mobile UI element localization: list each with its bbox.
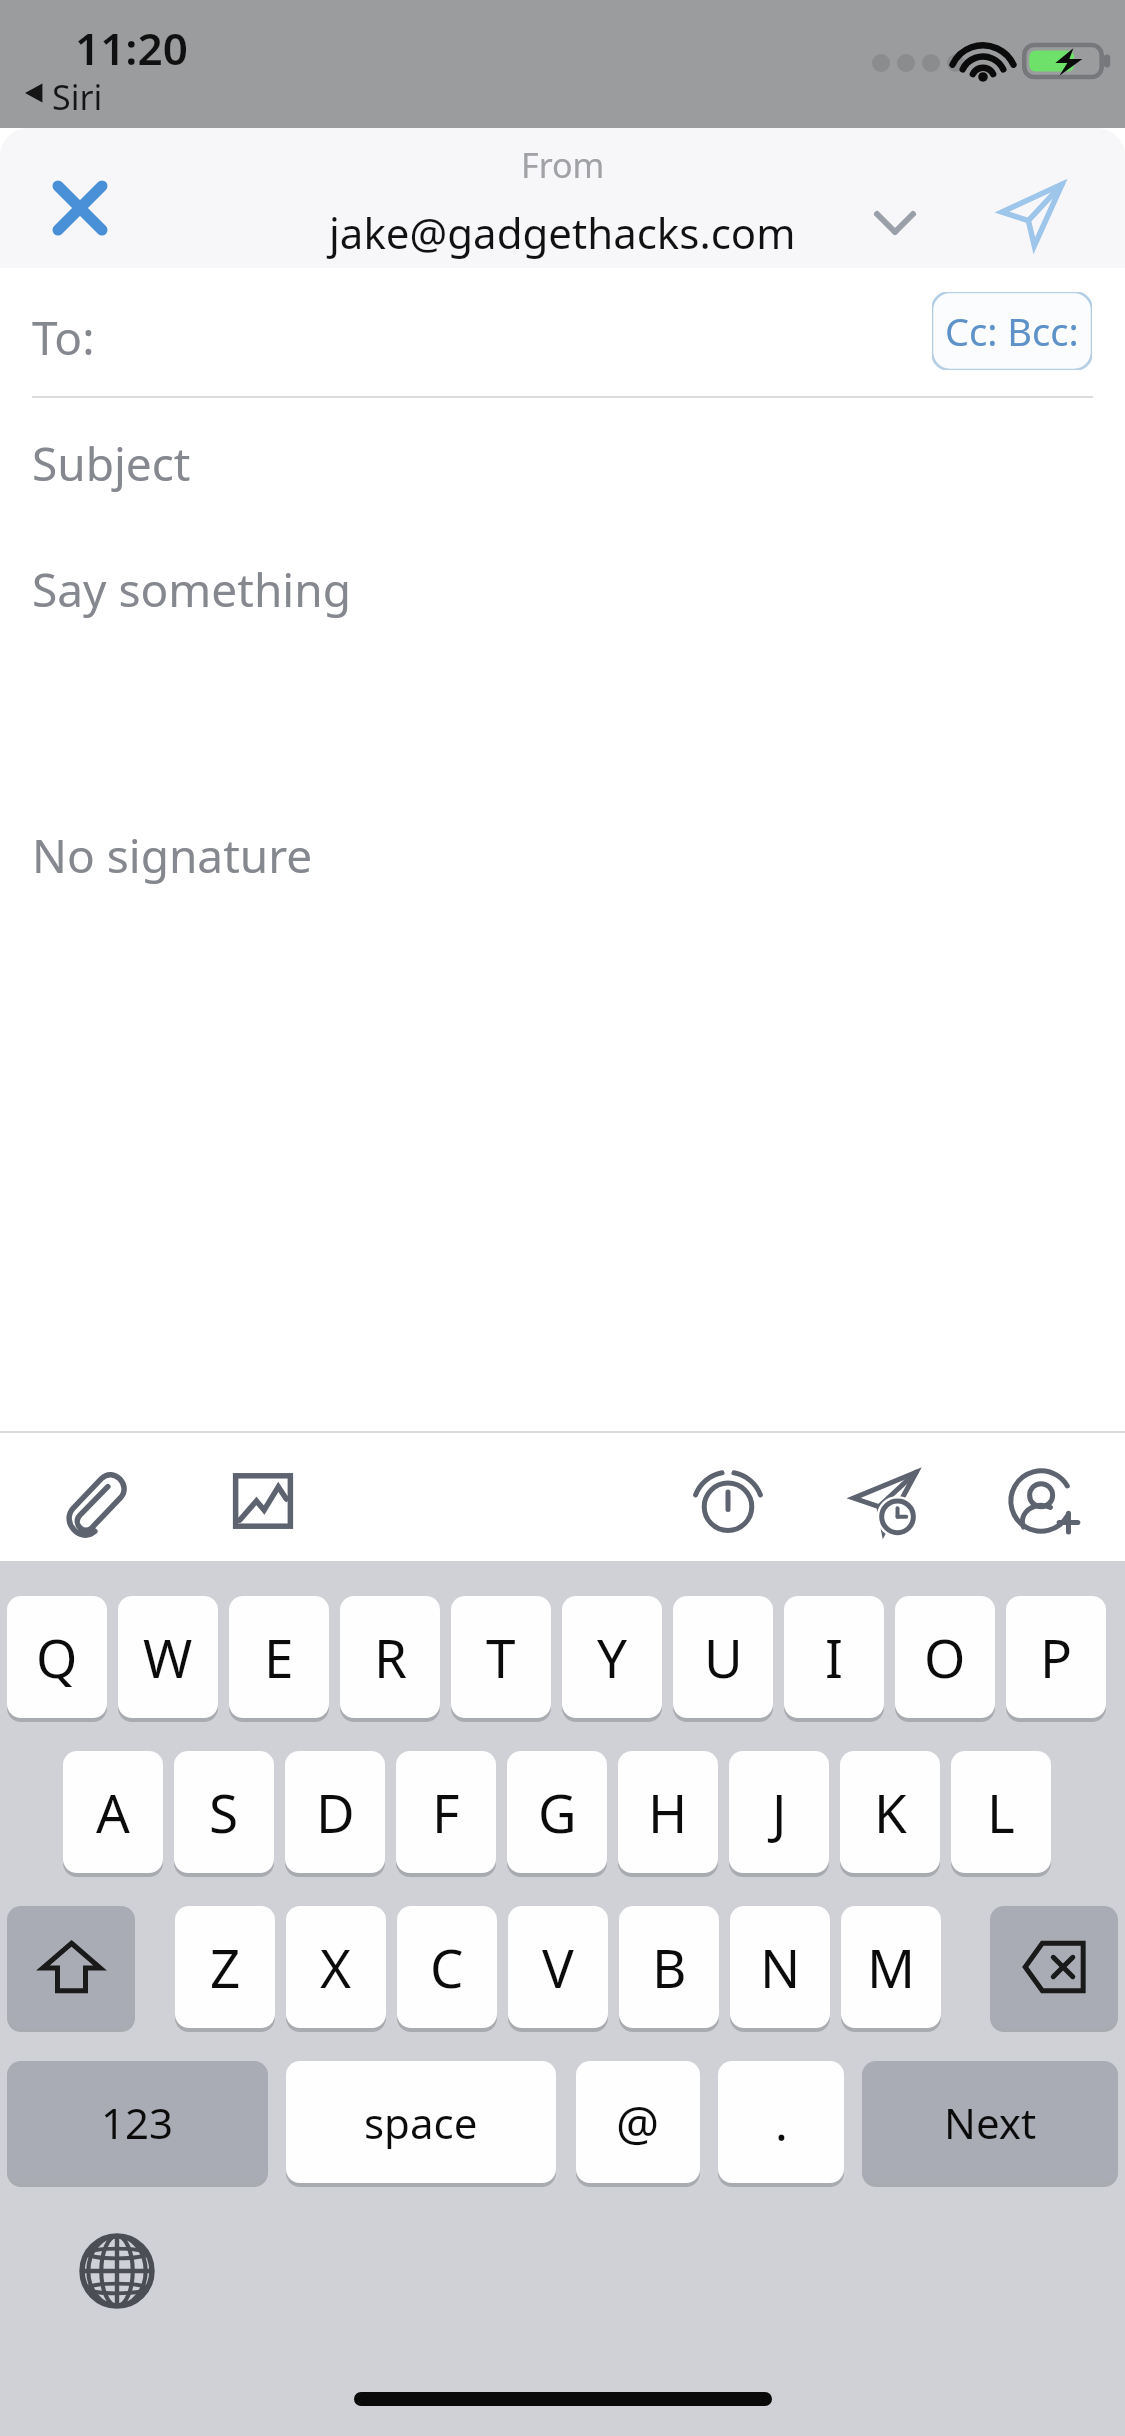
button[interactable]: C: [397, 1906, 497, 2028]
staticText: K: [874, 1776, 907, 1848]
staticText: J: [772, 1776, 787, 1848]
staticText: 123: [101, 2094, 174, 2151]
staticText: X: [320, 1931, 352, 2003]
staticText: N: [760, 1931, 801, 2003]
staticText: I: [825, 1621, 843, 1693]
staticText: B: [652, 1931, 687, 2003]
button[interactable]: H: [618, 1751, 718, 1873]
button[interactable]: Cc: Bcc:: [932, 292, 1092, 370]
staticText: S: [209, 1776, 239, 1848]
button[interactable]: K: [840, 1751, 940, 1873]
button[interactable]: I: [784, 1596, 884, 1718]
button[interactable]: G: [507, 1751, 607, 1873]
button[interactable]: To:: [0, 268, 1125, 396]
button[interactable]: Remind me: [676, 1449, 780, 1553]
button[interactable]: Subject: [0, 398, 1125, 526]
button[interactable]: M: [841, 1906, 941, 2028]
staticText: L: [987, 1776, 1015, 1848]
staticText: Say something: [32, 558, 351, 621]
staticText: .: [775, 2090, 788, 2155]
staticText: Z: [210, 1931, 241, 2003]
button[interactable]: Insert photo: [211, 1449, 315, 1553]
staticText: A: [96, 1776, 130, 1848]
staticText: Y: [597, 1621, 627, 1693]
button[interactable]: B: [619, 1906, 719, 2028]
staticText: To:: [32, 306, 95, 369]
staticText: jake@gadgethacks.com: [329, 204, 796, 261]
button[interactable]: W: [118, 1596, 218, 1718]
staticText: Next: [944, 2094, 1037, 2151]
button[interactable]: Attach file: [40, 1449, 144, 1553]
button[interactable]: A: [63, 1751, 163, 1873]
staticText: space: [364, 2094, 478, 2151]
staticText: @: [616, 2090, 660, 2155]
button[interactable]: P: [1006, 1596, 1106, 1718]
staticText: D: [316, 1776, 355, 1848]
button[interactable]: X: [286, 1906, 386, 2028]
button[interactable]: S: [174, 1751, 274, 1873]
button[interactable]: space: [286, 2061, 556, 2183]
staticText: O: [924, 1621, 966, 1693]
button[interactable]: Z: [175, 1906, 275, 2028]
staticText: No signature: [32, 824, 313, 887]
staticText: 11:20: [75, 18, 188, 78]
staticText: G: [538, 1776, 577, 1848]
staticText: From: [521, 142, 605, 188]
staticText: Cc: Bcc:: [945, 305, 1079, 357]
button[interactable]: Add contact: [992, 1449, 1096, 1553]
staticText: H: [648, 1776, 688, 1848]
staticText: Subject: [32, 432, 191, 495]
button[interactable]: Say something: [0, 526, 1125, 1426]
staticText: Q: [36, 1621, 78, 1693]
button[interactable]: Choose account: [850, 186, 940, 260]
staticText: T: [486, 1621, 516, 1693]
button[interactable]: V: [508, 1906, 608, 2028]
staticText: F: [432, 1776, 460, 1848]
button[interactable]: 123: [7, 2061, 268, 2183]
button[interactable]: Q: [7, 1596, 107, 1718]
button[interactable]: L: [951, 1751, 1051, 1873]
staticText: Siri: [52, 74, 103, 120]
button[interactable]: U: [673, 1596, 773, 1718]
button[interactable]: Y: [562, 1596, 662, 1718]
button[interactable]: N: [730, 1906, 830, 2028]
button[interactable]: F: [396, 1751, 496, 1873]
staticText: V: [542, 1931, 574, 2003]
staticText: E: [264, 1621, 294, 1693]
button[interactable]: D: [285, 1751, 385, 1873]
button[interactable]: Backspace: [990, 1906, 1118, 2028]
staticText: R: [374, 1621, 407, 1693]
button[interactable]: Switch keyboard: [62, 2216, 172, 2326]
button[interactable]: Cancel: [28, 156, 132, 260]
button[interactable]: .: [718, 2061, 844, 2183]
button[interactable]: @: [576, 2061, 700, 2183]
button[interactable]: Next: [862, 2061, 1118, 2183]
staticText: P: [1040, 1621, 1073, 1693]
button[interactable]: R: [340, 1596, 440, 1718]
staticText: U: [704, 1621, 743, 1693]
staticText: W: [143, 1621, 193, 1693]
button[interactable]: Shift: [7, 1906, 135, 2028]
button[interactable]: E: [229, 1596, 329, 1718]
button[interactable]: Send later: [834, 1449, 938, 1553]
button[interactable]: T: [451, 1596, 551, 1718]
staticText: M: [867, 1931, 916, 2003]
button[interactable]: O: [895, 1596, 995, 1718]
button[interactable]: J: [729, 1751, 829, 1873]
staticText: C: [430, 1931, 464, 2003]
button[interactable]: Send: [975, 158, 1087, 268]
